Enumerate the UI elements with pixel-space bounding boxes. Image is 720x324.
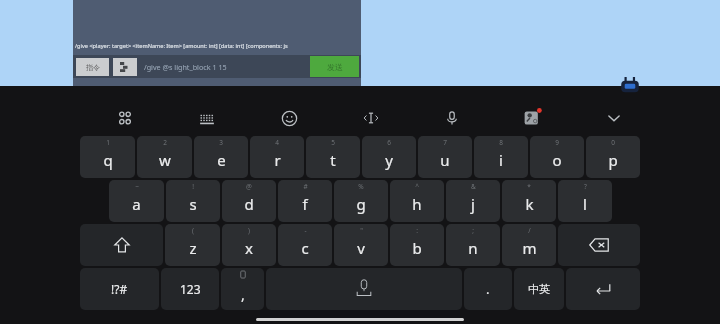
button[interactable]: 123 (161, 268, 219, 310)
button[interactable]: , (221, 268, 264, 310)
staticText: a (132, 194, 141, 214)
button[interactable]: & (446, 180, 500, 222)
button[interactable]: 中英 (514, 268, 564, 310)
staticText: 4 (275, 138, 279, 147)
staticText: m (522, 238, 537, 258)
staticText: 9 (555, 138, 559, 147)
staticText: !?# (111, 281, 128, 297)
staticText: h (412, 194, 422, 214)
button[interactable]: " (334, 224, 388, 266)
staticText: /give <player: target> <itemName: Item> … (75, 42, 288, 50)
staticText: 7 (443, 138, 447, 147)
staticText: @ (246, 182, 252, 191)
staticText: 发送 (327, 62, 343, 72)
button[interactable]: 8 (474, 136, 528, 178)
button[interactable]: 3 (194, 136, 248, 178)
staticText: ; (472, 226, 474, 235)
staticText: o (552, 150, 562, 170)
button[interactable]: / (502, 224, 556, 266)
staticText: 5 (331, 138, 335, 147)
button[interactable]: Hide keyboard (573, 103, 654, 133)
staticText: v (357, 238, 365, 258)
button[interactable]: Voice input (411, 103, 492, 133)
staticText: q (103, 150, 113, 170)
staticText: * (527, 182, 531, 191)
staticText: c (301, 238, 309, 258)
button[interactable]: # (278, 180, 332, 222)
staticText: " (360, 226, 363, 235)
button[interactable]: Text editing (330, 103, 411, 133)
staticText: d (244, 194, 254, 214)
button[interactable]: ! (166, 180, 220, 222)
button[interactable]: 2 (137, 136, 192, 178)
staticText: l (583, 194, 587, 214)
button[interactable]: Backspace (558, 224, 640, 266)
staticText: ~ (135, 182, 139, 191)
staticText: 指令 (86, 63, 100, 72)
staticText: # (303, 182, 308, 191)
staticText: b (412, 238, 422, 258)
staticText: u (440, 150, 450, 170)
button[interactable]: 9 (530, 136, 584, 178)
staticText: /give @s light_block 1 15 (144, 62, 227, 72)
staticText: s (189, 194, 197, 214)
button[interactable]: Shift (80, 224, 163, 266)
staticText: ) (248, 226, 250, 235)
staticText: x (245, 238, 253, 258)
button[interactable]: Space (266, 268, 462, 310)
button[interactable]: Settings (492, 103, 573, 133)
button[interactable]: Enter (566, 268, 640, 310)
button[interactable]: . (464, 268, 512, 310)
button[interactable]: % (334, 180, 388, 222)
staticText: k (525, 194, 534, 214)
button[interactable]: ) (222, 224, 276, 266)
button[interactable]: ? (558, 180, 612, 222)
staticText: f (302, 194, 308, 214)
button[interactable]: Paste (113, 58, 137, 76)
staticText: t (330, 150, 336, 170)
staticText: 1 (106, 138, 110, 147)
button[interactable]: ^ (390, 180, 444, 222)
staticText: p (608, 150, 618, 170)
button[interactable]: 6 (362, 136, 416, 178)
staticText: ! (192, 182, 194, 191)
button[interactable]: Keyboard layout (166, 103, 248, 133)
staticText: : (416, 226, 418, 235)
button[interactable]: Clipboard (619, 76, 641, 93)
staticText: 6 (387, 138, 391, 147)
staticText: w (159, 150, 171, 170)
staticText: ^ (415, 182, 419, 191)
button[interactable]: !?# (80, 268, 159, 310)
button[interactable]: ( (165, 224, 220, 266)
button[interactable]: * (502, 180, 556, 222)
staticText: n (468, 238, 478, 258)
button[interactable]: Emoji (248, 103, 330, 133)
staticText: j (471, 194, 475, 214)
staticText: 0 (611, 138, 615, 147)
button[interactable]: : (390, 224, 444, 266)
button[interactable]: - (278, 224, 332, 266)
button[interactable]: 7 (418, 136, 472, 178)
staticText: - (304, 226, 307, 235)
button[interactable]: @ (222, 180, 276, 222)
staticText: 中英 (528, 282, 550, 296)
button[interactable]: 指令 (76, 58, 109, 76)
staticText: 123 (180, 281, 201, 297)
button[interactable]: ~ (109, 180, 164, 222)
button[interactable]: 发送 (310, 56, 359, 77)
staticText: 2 (163, 138, 167, 147)
button[interactable]: 4 (250, 136, 304, 178)
staticText: . (486, 280, 490, 298)
button[interactable]: 0 (586, 136, 640, 178)
staticText: % (358, 182, 364, 191)
button[interactable]: 1 (80, 136, 135, 178)
staticText: g (356, 194, 366, 214)
staticText: 8 (499, 138, 503, 147)
staticText: / (528, 226, 531, 235)
button[interactable]: 5 (306, 136, 360, 178)
staticText: , (241, 285, 245, 304)
button[interactable]: ; (446, 224, 500, 266)
button[interactable]: Apps (84, 103, 166, 133)
staticText: ? (584, 182, 587, 191)
staticText: y (385, 150, 393, 170)
